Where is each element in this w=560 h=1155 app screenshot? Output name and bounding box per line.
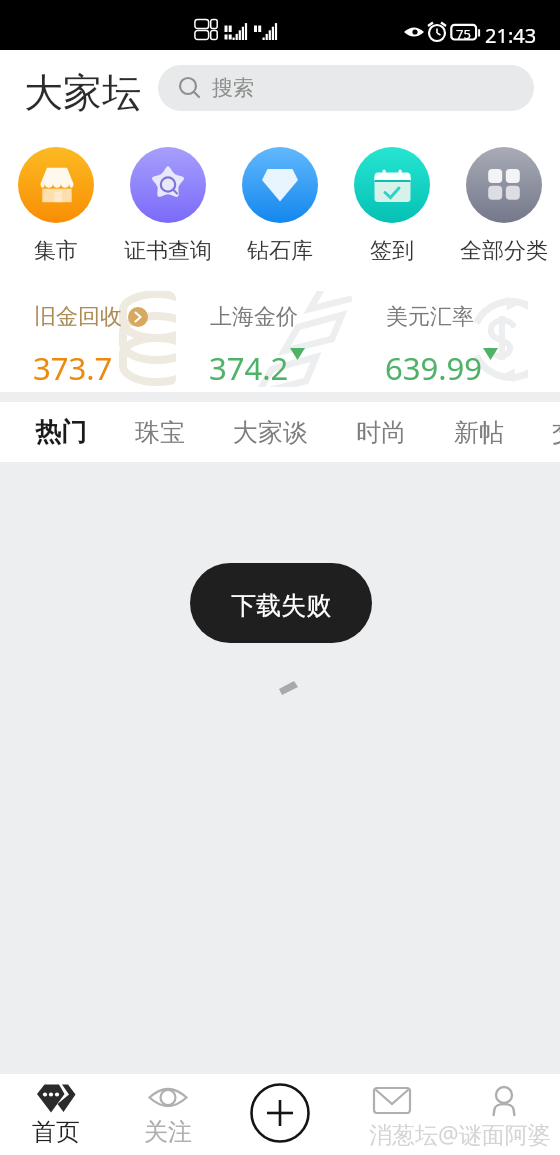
staticText: 374.2 — [209, 347, 289, 387]
button[interactable]: 新帖 — [430, 402, 528, 462]
staticText: 大家谈 — [233, 417, 308, 448]
button[interactable]: 上海金价 — [192, 291, 352, 387]
button[interactable]: 钻石库 — [224, 147, 336, 265]
staticText: 美元汇率 — [386, 303, 474, 331]
staticText: 639.99 — [385, 347, 482, 387]
staticText: 时尚 — [356, 417, 406, 448]
staticText: 上海金价 — [210, 303, 298, 331]
button[interactable]: 珠宝 — [111, 402, 209, 462]
button[interactable]: 大家坛 — [24, 68, 141, 117]
staticText: 消葱坛@谜面阿婆 — [369, 1118, 551, 1149]
button[interactable]: Profile — [448, 1074, 560, 1155]
button[interactable]: 大家谈 — [209, 402, 332, 462]
staticText: 75 — [456, 25, 471, 43]
button[interactable]: 旧金回收 — [16, 291, 176, 387]
staticText: 373.7 — [33, 347, 113, 387]
button[interactable]: 签到 — [336, 147, 448, 265]
staticText: 下载失败 — [231, 590, 331, 621]
staticText: 热门 — [35, 416, 87, 449]
button[interactable]: Create post — [224, 1074, 336, 1155]
staticText: 旧金回收 — [34, 303, 122, 331]
staticText: 集市 — [34, 237, 78, 265]
button[interactable]: 证书查询 — [112, 147, 224, 265]
button[interactable]: 集市 — [0, 147, 112, 265]
staticText: 钻石库 — [247, 237, 313, 265]
staticText: 签到 — [370, 237, 414, 265]
staticText: 珠宝 — [135, 417, 185, 448]
staticText: 搜索 — [212, 75, 254, 101]
button[interactable]: 热门 — [11, 402, 111, 462]
staticText: 新帖 — [454, 417, 504, 448]
button[interactable]: 全部分类 — [448, 147, 560, 265]
staticText: 首页 — [32, 1117, 80, 1147]
staticText: 关注 — [144, 1117, 192, 1147]
button[interactable]: 关注 — [112, 1074, 224, 1155]
staticText: 21:43 — [485, 22, 537, 49]
button[interactable]: 搜索 — [158, 65, 534, 111]
button[interactable]: 美元汇率 — [368, 291, 528, 387]
button[interactable]: 交易 — [528, 402, 560, 462]
staticText: 大家坛 — [24, 68, 141, 117]
button[interactable]: Messages — [336, 1074, 448, 1155]
button[interactable]: 时尚 — [332, 402, 430, 462]
staticText: 全部分类 — [460, 237, 548, 265]
button[interactable]: 首页 — [0, 1074, 112, 1155]
staticText: 证书查询 — [124, 237, 212, 265]
